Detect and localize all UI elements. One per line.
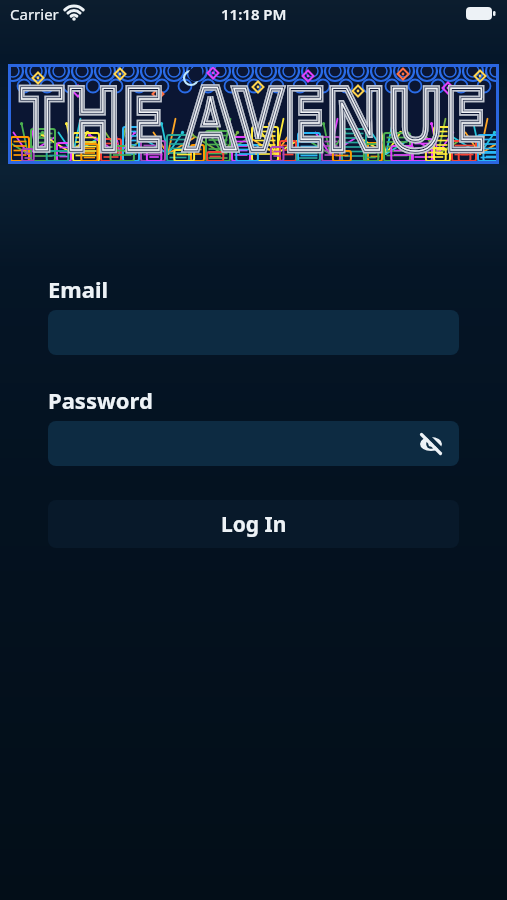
button[interactable] [48,421,459,466]
staticText: THE AVENUE [20,64,488,164]
staticText: Password [48,385,153,415]
staticText: Email [48,274,109,304]
staticText: Log In [221,510,287,539]
staticText: THE AVENUE [20,64,488,164]
button[interactable] [418,431,444,457]
staticText: Carrier [10,4,59,24]
staticText: THE AVENUE [20,64,488,164]
staticText: 11:18 PM [221,4,287,24]
button[interactable]: Log In [48,500,459,548]
